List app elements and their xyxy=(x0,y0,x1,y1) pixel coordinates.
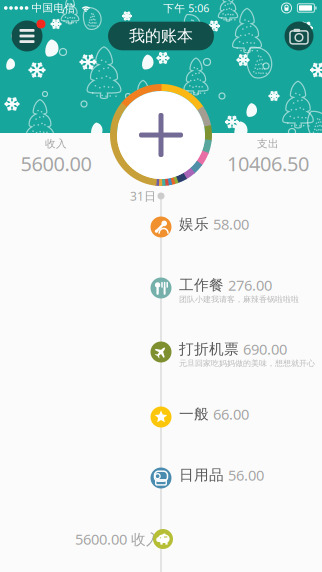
staticText: 支出 xyxy=(257,137,279,150)
button[interactable]: 我的账本 xyxy=(108,22,214,50)
staticText: 娱乐 xyxy=(179,215,209,233)
staticText: 日用品 xyxy=(179,466,224,484)
button[interactable]: 打折机票 xyxy=(0,341,322,368)
button[interactable]: Camera xyxy=(283,20,314,51)
staticText: 我的账本 xyxy=(129,26,193,46)
staticText: 团队小建我请客，麻辣香锅啦啦啦 xyxy=(179,294,299,304)
staticText: 56.00 xyxy=(228,465,264,485)
staticText: 31日 xyxy=(130,188,156,204)
staticText: 690.00 xyxy=(243,339,287,359)
staticText: 276.00 xyxy=(228,275,272,295)
staticText: 工作餐 xyxy=(179,276,224,294)
button[interactable]: 日用品 xyxy=(0,467,322,488)
button[interactable]: Menu xyxy=(9,19,45,53)
staticText: 一般 xyxy=(179,405,209,423)
staticText: 10406.50 xyxy=(227,150,309,177)
staticText: 58.00 xyxy=(213,214,249,234)
button[interactable]: Add entry xyxy=(110,84,212,186)
staticText: 中国电信 xyxy=(28,1,75,14)
staticText: 下午 5:06 xyxy=(163,1,209,15)
staticText: 5600.00 收入 xyxy=(75,529,161,549)
staticText: 打折机票 xyxy=(179,340,239,358)
button[interactable]: 娱乐 xyxy=(0,216,322,237)
staticText: 66.00 xyxy=(213,404,249,424)
button[interactable]: 一般 xyxy=(0,406,322,427)
staticText: 元旦回家吃妈妈做的美味，想想就开心 xyxy=(179,358,315,368)
staticText: 5600.00 xyxy=(20,150,91,177)
staticText: 收入 xyxy=(45,137,67,150)
button[interactable]: 工作餐 xyxy=(0,277,322,304)
